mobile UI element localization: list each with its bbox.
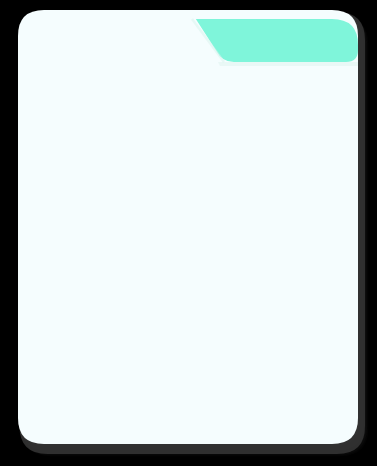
button[interactable]: Folder tab card xyxy=(0,0,377,466)
